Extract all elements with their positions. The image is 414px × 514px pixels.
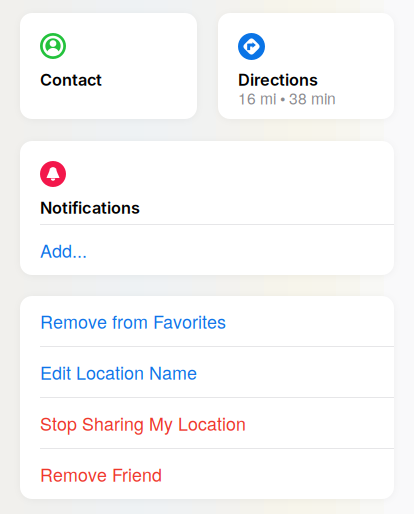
staticText: Remove from Favorites: [40, 308, 226, 334]
staticText: Contact: [40, 70, 102, 90]
button[interactable]: Add...: [20, 225, 394, 275]
staticText: 16 mi • 38 min: [238, 87, 336, 109]
staticText: Stop Sharing My Location: [40, 410, 246, 436]
button[interactable]: Contact: [20, 13, 197, 119]
staticText: Directions: [238, 70, 318, 90]
staticText: Add...: [40, 237, 87, 263]
button[interactable]: Directions: [218, 13, 394, 119]
staticText: Notifications: [40, 198, 140, 218]
button[interactable]: Remove Friend: [20, 449, 394, 499]
button[interactable]: Stop Sharing My Location: [20, 398, 394, 448]
staticText: Edit Location Name: [40, 359, 197, 385]
button[interactable]: Remove from Favorites: [20, 296, 394, 346]
staticText: Remove Friend: [40, 461, 162, 487]
button[interactable]: Notifications: [20, 141, 394, 224]
button[interactable]: Edit Location Name: [20, 347, 394, 397]
